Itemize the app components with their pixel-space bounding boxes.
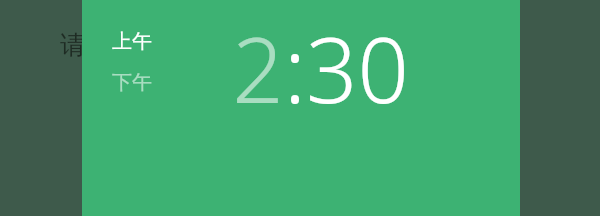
button[interactable]: 2 <box>232 6 284 130</box>
staticText: 上午 <box>112 29 152 54</box>
staticText: 2 <box>232 7 284 130</box>
staticText: 请 <box>60 29 86 62</box>
staticText: 30 <box>306 7 409 130</box>
button[interactable]: 上午 <box>112 24 170 58</box>
staticText: 下午 <box>112 70 152 95</box>
button[interactable]: 下午 <box>112 65 170 99</box>
button[interactable]: 30 <box>306 6 409 130</box>
staticText: : <box>284 7 306 130</box>
